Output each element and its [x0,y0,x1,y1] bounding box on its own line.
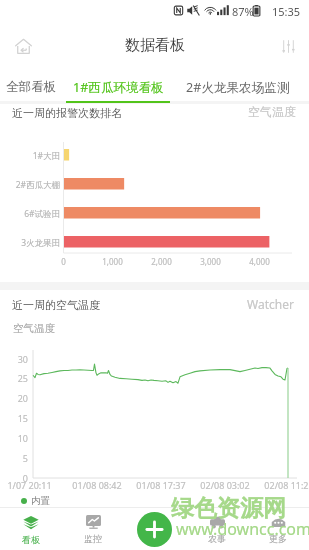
staticText: 01/08 08:42 [72,479,122,491]
button[interactable]: 看板 [9,508,53,550]
staticText: 87% [232,4,254,19]
staticText: 监控 [84,533,102,544]
staticText: 5 [22,452,28,464]
button[interactable]: 全部看板 [3,70,59,101]
staticText: 近一周的空气温度 [12,298,100,312]
staticText: 内置 [31,495,50,507]
staticText: 01/08 17:37 [136,479,186,491]
button[interactable]: 监控 [71,508,115,550]
staticText: 20 [17,392,28,404]
staticText: 30 [17,353,28,365]
staticText: 1,000 [102,256,123,267]
staticText: 绿色资源网 [171,494,286,523]
button[interactable]: Filter [273,31,303,61]
staticText: Watcher [247,296,294,312]
staticText: 3火龙果田 [21,237,60,249]
staticText: 数据看板 [125,36,185,55]
staticText: 空气温度 [248,104,296,119]
staticText: 10 [17,432,28,444]
staticText: 6#试验田 [24,208,60,220]
button[interactable]: 更多 [256,508,300,550]
staticText: 2#火龙果农场监测 [186,79,290,96]
staticText: 15:35 [272,4,301,19]
staticText: 0 [22,472,28,484]
staticText: 看板 [22,534,40,545]
staticText: 02/08 11:22 [264,479,309,491]
staticText: 1#西瓜环境看板 [73,79,164,96]
staticText: 空气温度 [13,322,55,335]
button[interactable]: 1#西瓜环境看板 [66,70,170,101]
staticText: 15 [17,412,28,424]
staticText: 2,000 [151,256,172,267]
staticText: 1/07 20:11 [7,479,52,491]
staticText: 3,000 [200,256,221,267]
staticText: 农事 [208,533,226,544]
staticText: 2#西瓜大棚 [15,179,60,191]
staticText: 全部看板 [6,79,57,95]
button[interactable]: 农事 [195,508,239,550]
staticText: 4,000 [249,256,270,267]
staticText: 02/08 03:02 [200,479,250,491]
button[interactable]: Home [8,31,38,61]
staticText: 1#大田 [32,150,60,162]
staticText: 25 [17,372,28,384]
staticText: www.downcc.com [176,518,309,540]
button[interactable]: Add [137,512,172,547]
staticText: 0 [61,256,66,267]
staticText: 近一周的报警次数排名 [12,106,122,120]
staticText: 更多 [269,533,287,544]
button[interactable]: 2#火龙果农场监测 [181,70,294,101]
